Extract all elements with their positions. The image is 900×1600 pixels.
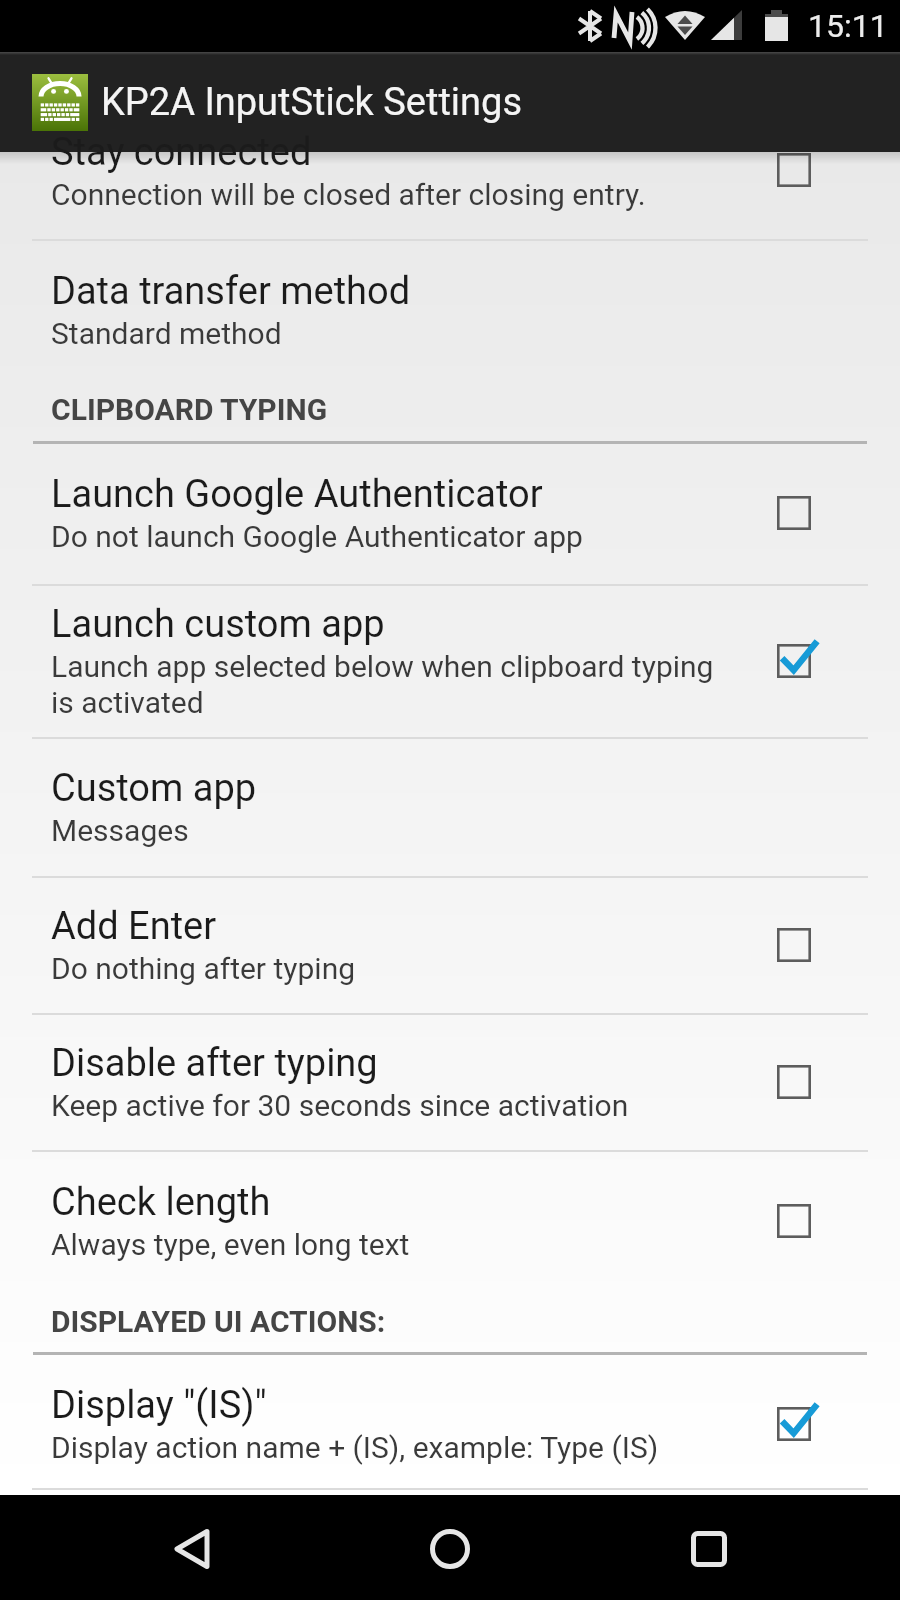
button[interactable]: Launch custom app: [0, 584, 900, 737]
staticText: Keep active for 30 seconds since activat…: [51, 1088, 629, 1123]
staticText: Do not launch Google Authenticator app: [51, 519, 583, 554]
staticText: Do nothing after typing: [51, 951, 356, 986]
staticText: DISPLAYED UI ACTIONS:: [51, 1304, 386, 1339]
button[interactable]: Disable after typing: [0, 1013, 900, 1150]
staticText: Display action name + (IS), example: Typ…: [51, 1430, 659, 1465]
button[interactable]: Display "(IS)": [0, 1353, 900, 1495]
staticText: Launch custom app: [51, 602, 385, 647]
staticText: CLIPBOARD TYPING: [51, 392, 328, 427]
staticText: Data transfer method: [51, 269, 411, 314]
staticText: Standard method: [51, 316, 282, 351]
staticText: Connection will be closed after closing …: [51, 177, 646, 212]
staticText: KP2A InputStick Settings: [101, 80, 522, 125]
button[interactable]: Back: [142, 1499, 242, 1599]
staticText: Check length: [51, 1180, 271, 1225]
button[interactable]: Check length: [0, 1150, 900, 1292]
staticText: Launch Google Authenticator: [51, 472, 543, 517]
staticText: Launch app selected below when clipboard…: [51, 649, 714, 720]
button[interactable]: [0, 152, 900, 239]
button[interactable]: Recent apps: [659, 1499, 759, 1599]
button[interactable]: Add Enter: [0, 876, 900, 1013]
staticText: Messages: [51, 813, 189, 848]
button[interactable]: Custom app: [0, 737, 900, 876]
staticText: Disable after typing: [51, 1041, 378, 1086]
staticText: 15:11: [808, 7, 888, 45]
staticText: Custom app: [51, 766, 257, 811]
staticText: Always type, even long text: [51, 1227, 410, 1262]
staticText: Display "(IS)": [51, 1383, 267, 1428]
button[interactable]: Data transfer method: [0, 239, 900, 381]
button[interactable]: Launch Google Authenticator: [0, 442, 900, 584]
staticText: Stay connected: [51, 130, 312, 175]
button[interactable]: Home: [400, 1499, 500, 1599]
staticText: Add Enter: [51, 904, 217, 949]
